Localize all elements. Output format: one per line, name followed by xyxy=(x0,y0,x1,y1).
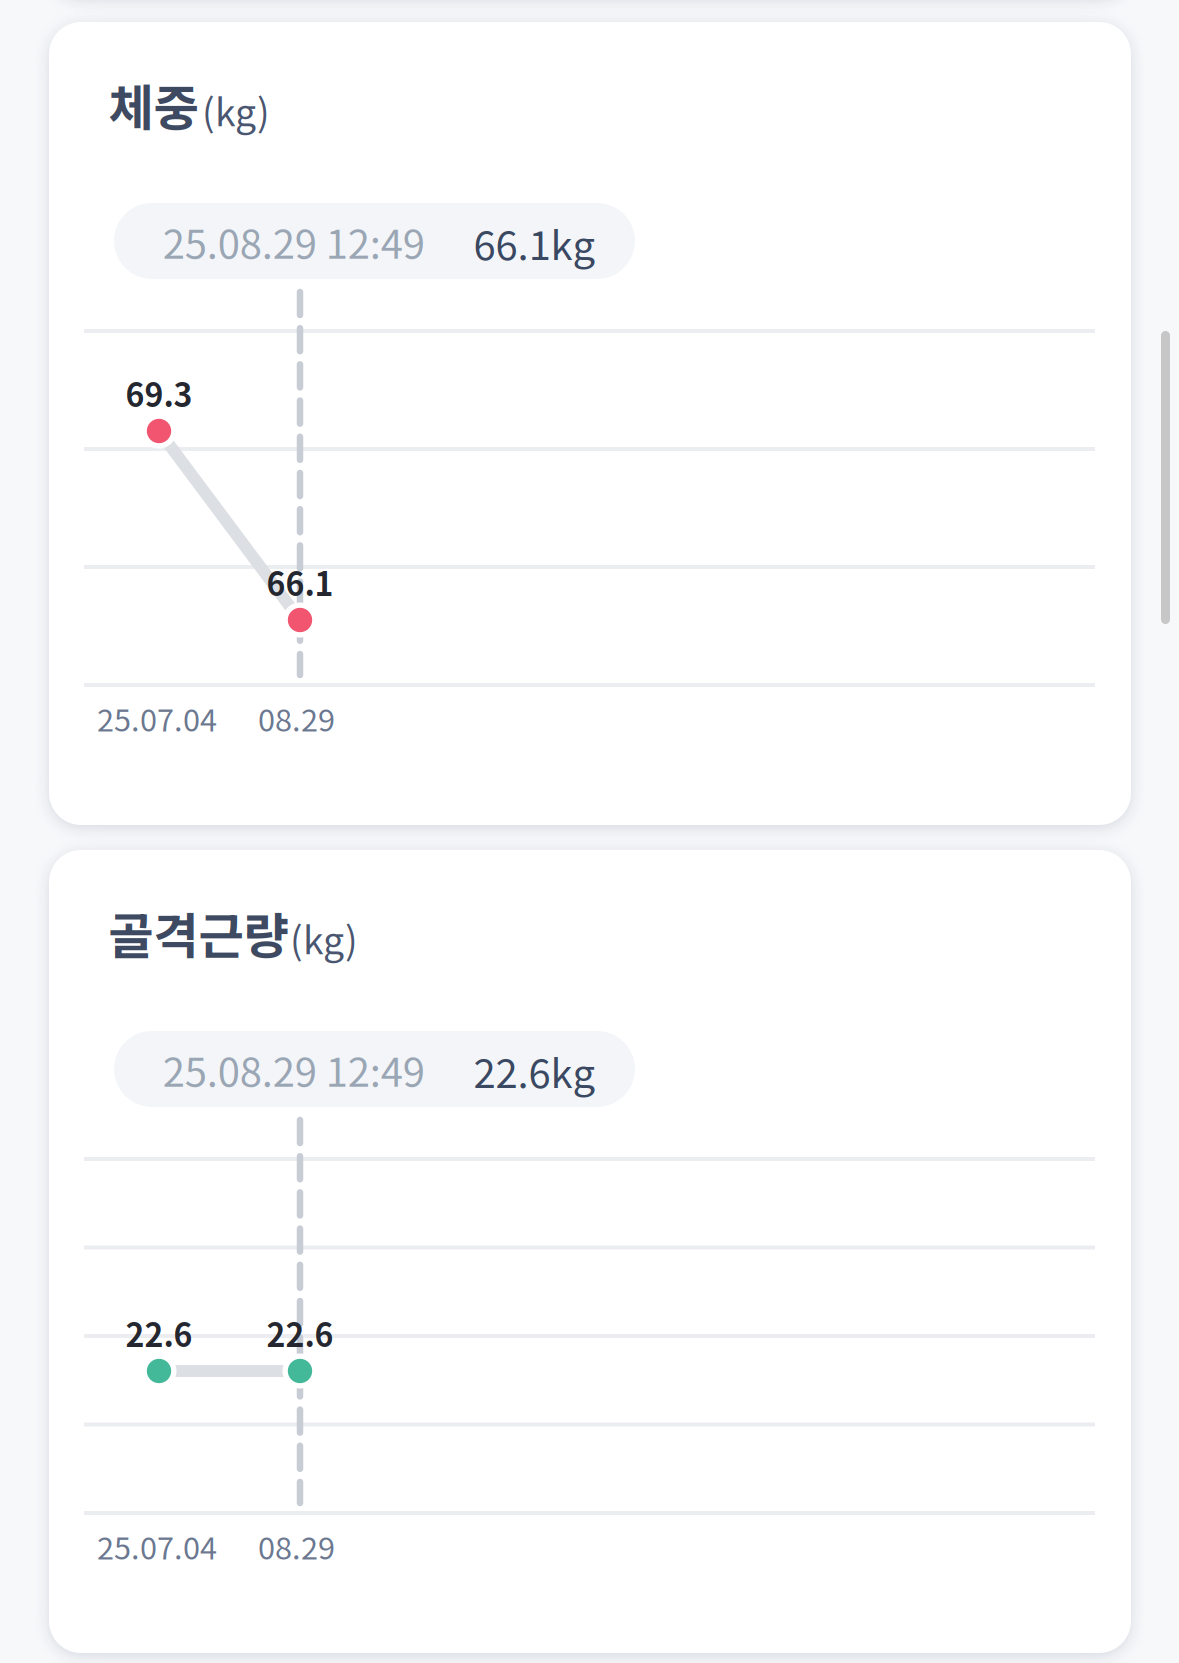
staticText: 25.07.04 xyxy=(97,1524,217,1568)
staticText: (kg) xyxy=(202,83,270,137)
staticText: 66.1kg xyxy=(473,213,595,271)
staticText: 22.6 xyxy=(125,1310,192,1356)
staticText: 25.07.04 xyxy=(97,696,217,740)
staticText: 08.29 xyxy=(258,1524,335,1568)
staticText: 22.6 xyxy=(266,1310,333,1356)
staticText: 22.6kg xyxy=(473,1041,595,1099)
staticText: (kg) xyxy=(290,911,358,965)
staticText: 25.08.29 12:49 xyxy=(163,212,425,270)
staticText: 66.1 xyxy=(266,559,333,605)
staticText: 체중 xyxy=(108,69,198,140)
staticText: 69.3 xyxy=(125,370,192,416)
button[interactable]: 체중 xyxy=(49,22,1131,825)
staticText: 25.08.29 12:49 xyxy=(163,1040,425,1098)
staticText: 골격근량 xyxy=(108,897,288,968)
staticText: 08.29 xyxy=(258,696,335,740)
button[interactable]: 골격근량 xyxy=(49,850,1131,1653)
